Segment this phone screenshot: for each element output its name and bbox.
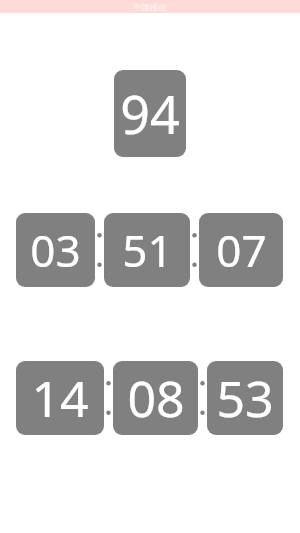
button[interactable]: 08: [113, 361, 198, 435]
button[interactable]: 03: [16, 213, 95, 287]
staticText: 53: [216, 364, 274, 432]
button[interactable]: 53: [207, 361, 283, 435]
button[interactable]: 94: [114, 70, 186, 157]
staticText: 08: [127, 364, 185, 432]
button[interactable]: 07: [199, 213, 283, 287]
staticText: 03: [30, 220, 81, 280]
staticText: 14: [31, 364, 89, 432]
staticText: 07: [216, 220, 267, 280]
staticText: 51: [122, 220, 173, 280]
button[interactable]: 14: [16, 361, 104, 435]
staticText: 中国移动: [134, 2, 166, 12]
button[interactable]: 51: [104, 213, 190, 287]
staticText: 94: [120, 78, 180, 149]
